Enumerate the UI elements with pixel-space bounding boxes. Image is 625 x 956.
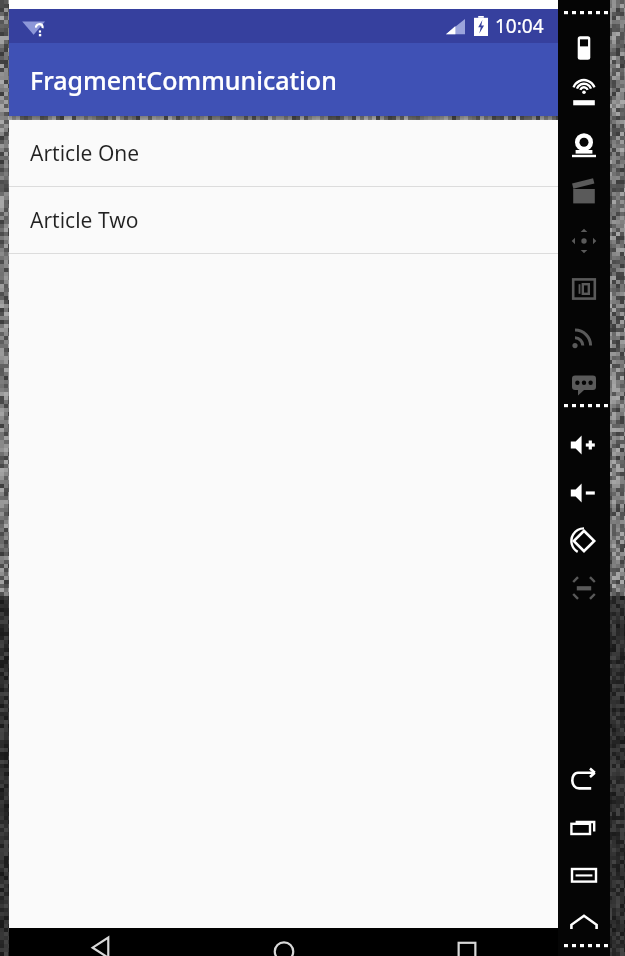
staticText: FragmentCommunication xyxy=(30,63,337,97)
button[interactable]: Camera xyxy=(558,124,610,164)
button[interactable]: GPS xyxy=(558,76,610,116)
button[interactable]: Menu xyxy=(558,855,610,895)
staticText: 10:04 xyxy=(495,13,544,39)
staticText: Article One xyxy=(30,139,140,168)
button[interactable]: Recent apps xyxy=(375,928,558,956)
button[interactable]: Device ID xyxy=(558,269,610,309)
button[interactable]: Zoom 1:1 xyxy=(558,568,610,608)
button[interactable]: Home xyxy=(192,928,375,956)
button[interactable]: Back xyxy=(9,928,192,956)
button[interactable]: Overview xyxy=(558,808,610,848)
button[interactable]: Cellular xyxy=(558,316,610,356)
button[interactable]: Power xyxy=(558,28,610,68)
button[interactable]: Article One xyxy=(9,120,558,186)
button[interactable]: Volume up xyxy=(558,425,610,465)
staticText: Article Two xyxy=(30,206,139,235)
button[interactable]: Rotate xyxy=(558,521,610,561)
button[interactable]: Messages xyxy=(558,364,610,404)
button[interactable]: Back xyxy=(558,760,610,800)
button[interactable]: D-pad xyxy=(558,221,610,261)
button[interactable]: Home xyxy=(558,903,610,943)
button[interactable]: Volume down xyxy=(558,473,610,513)
button[interactable]: Article Two xyxy=(9,187,558,253)
button[interactable]: Record screen xyxy=(558,172,610,212)
button[interactable]: FragmentCommunication xyxy=(9,43,558,116)
